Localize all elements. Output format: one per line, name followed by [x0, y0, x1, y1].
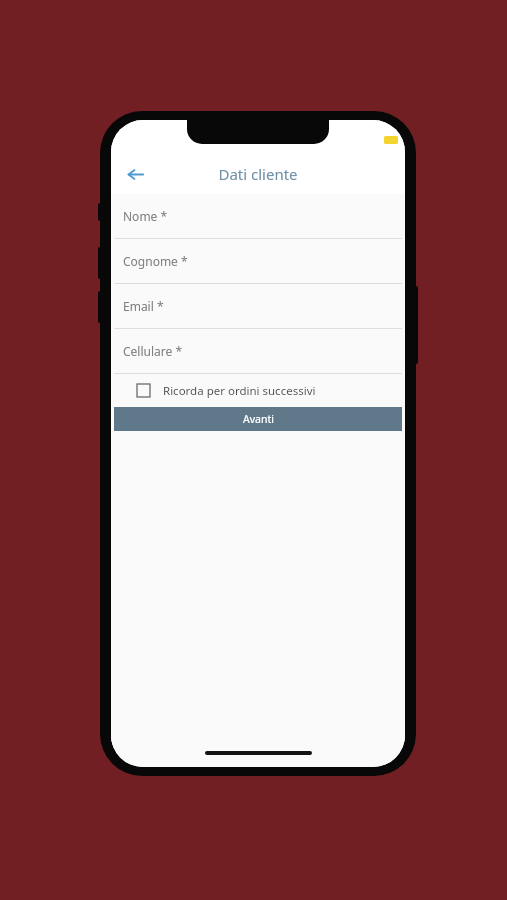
staticText: Cellulare * [123, 343, 183, 359]
staticText: Avanti [243, 412, 274, 426]
button[interactable]: Nome * [111, 194, 405, 239]
staticText: Ricorda per ordini successivi [163, 383, 316, 399]
button[interactable]: Back [117, 156, 153, 192]
button[interactable]: Cognome * [111, 239, 405, 284]
button[interactable]: Cellulare * [111, 329, 405, 374]
staticText: Nome * [123, 208, 168, 224]
button[interactable]: Email * [111, 284, 405, 329]
staticText: Dati cliente [218, 164, 298, 184]
staticText: Cognome * [123, 253, 188, 269]
staticText: Email * [123, 298, 164, 314]
button[interactable]: Ricorda per ordini successivi [111, 374, 405, 407]
button[interactable]: Avanti [114, 407, 402, 431]
